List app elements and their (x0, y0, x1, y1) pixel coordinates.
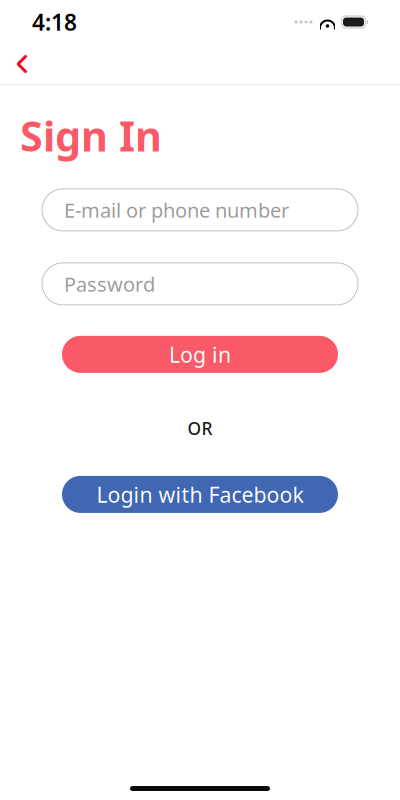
button[interactable]: Log in (62, 336, 338, 373)
staticText: Sign In (20, 108, 162, 163)
staticText: Password (64, 271, 155, 297)
button[interactable]: Password (42, 263, 358, 305)
staticText: Login with Facebook (96, 480, 303, 508)
button[interactable]: E-mail or phone number (42, 189, 358, 231)
button[interactable]: Back (0, 44, 44, 84)
staticText: OR (187, 417, 212, 440)
button[interactable]: Login with Facebook (62, 476, 338, 513)
staticText: E-mail or phone number (64, 197, 289, 223)
staticText: 4:18 (32, 7, 77, 37)
staticText: Log in (169, 340, 231, 368)
